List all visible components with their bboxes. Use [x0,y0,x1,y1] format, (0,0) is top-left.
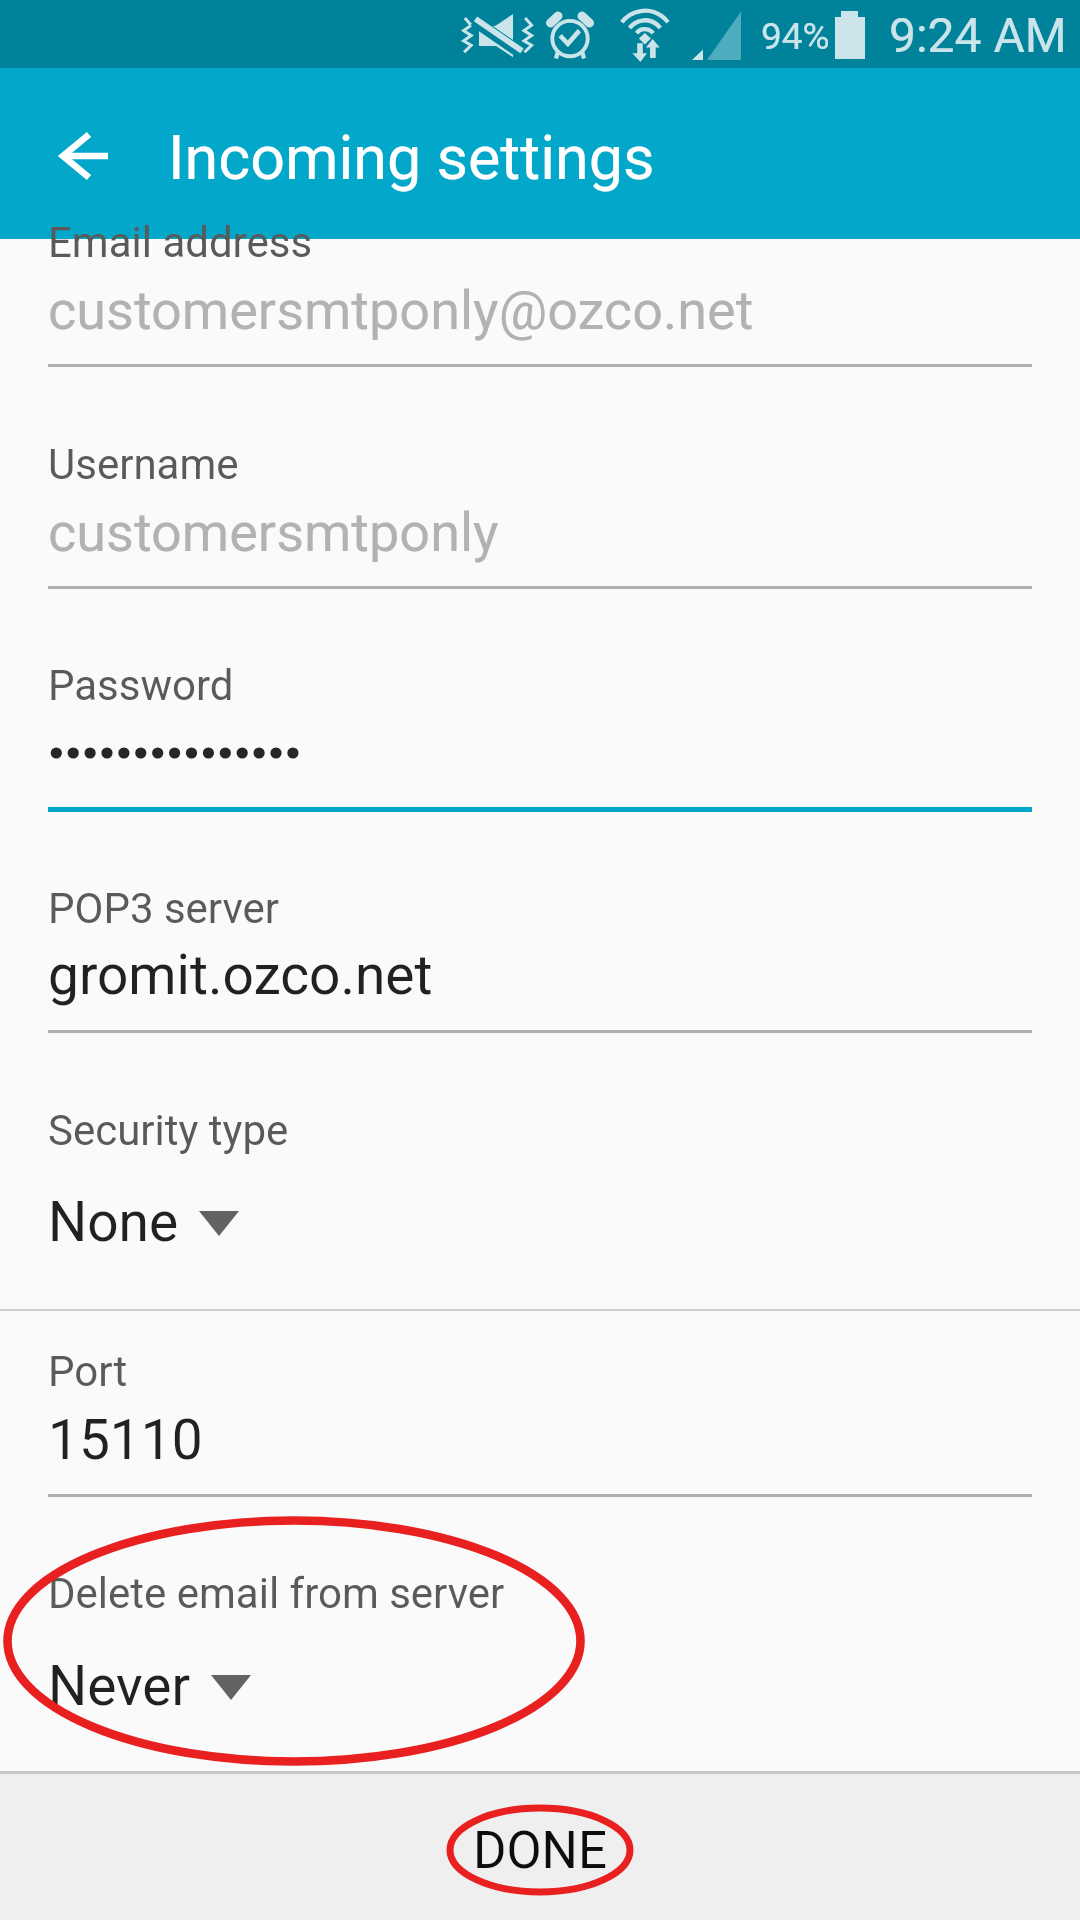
staticText: DONE [473,1821,607,1881]
staticText: Security type [48,1106,289,1155]
staticText: Never [48,1654,191,1718]
button[interactable] [0,380,1080,590]
staticText: customersmtponly@ozco.net [48,279,754,342]
button[interactable] [0,600,1080,812]
staticText: 15110 [48,1408,203,1472]
staticText: gromit.ozco.net [48,943,433,1007]
staticText: Username [48,440,239,489]
staticText: Delete email from server [48,1569,505,1618]
staticText: 94% [761,15,830,58]
staticText: 9:24 AM [889,7,1067,63]
button[interactable] [0,1312,1080,1512]
staticText: Incoming settings [168,122,655,193]
button[interactable] [0,825,1080,1035]
staticText: POP3 server [48,884,280,933]
staticText: None [48,1190,179,1254]
staticText: customersmtponly [48,501,499,564]
button[interactable] [0,1045,1080,1307]
button[interactable] [0,1520,1080,1770]
staticText: Port [48,1347,128,1396]
button[interactable] [0,239,1080,368]
button[interactable]: Back [36,103,132,199]
button[interactable]: DONE [403,1799,677,1903]
staticText: Email address [48,218,313,267]
staticText: Password [48,661,234,710]
